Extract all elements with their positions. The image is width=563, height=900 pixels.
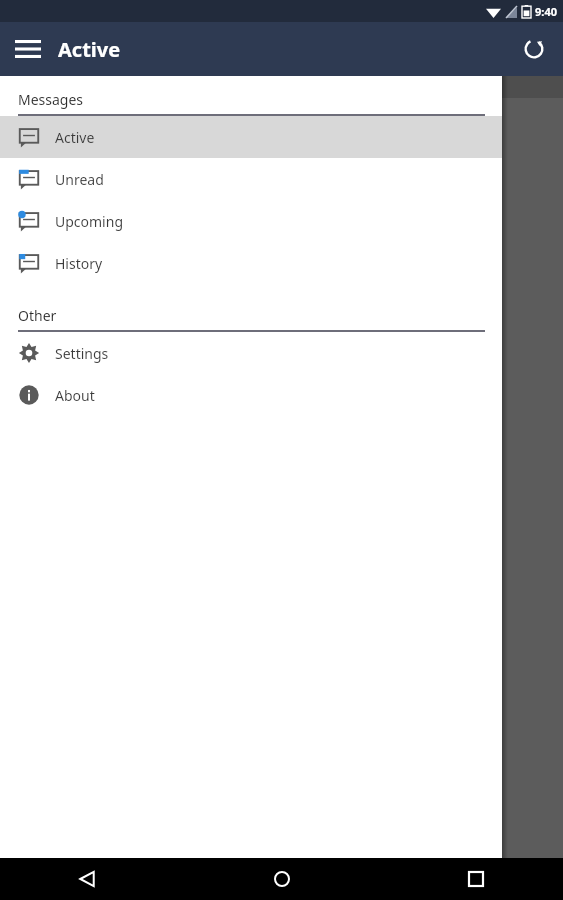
- staticText: Other: [18, 306, 57, 325]
- staticText: About: [55, 386, 95, 405]
- button[interactable]: About: [0, 374, 502, 416]
- staticText: Active: [55, 128, 95, 147]
- staticText: Upcoming: [55, 212, 123, 231]
- button[interactable]: Settings: [0, 332, 502, 374]
- staticText: Melbourne…: [4, 180, 82, 198]
- button[interactable]: History: [0, 242, 502, 284]
- button[interactable]: Back: [66, 858, 108, 900]
- staticText: History: [55, 254, 103, 273]
- button[interactable]: Open navigation drawer: [8, 29, 48, 69]
- staticText: Insurance pr…: [4, 110, 90, 128]
- staticText: Messages: [18, 90, 84, 109]
- button[interactable]: Upcoming: [0, 200, 502, 242]
- staticText: Unread: [55, 170, 104, 189]
- button[interactable]: Unread: [0, 158, 502, 200]
- staticText: Active: [58, 36, 121, 63]
- button[interactable]: Active: [0, 116, 502, 158]
- button[interactable]: Refresh: [513, 28, 555, 70]
- button[interactable]: Recents: [455, 858, 497, 900]
- staticText: Settings: [55, 344, 109, 363]
- staticText: 9:40: [535, 4, 557, 19]
- button[interactable]: Home: [261, 858, 303, 900]
